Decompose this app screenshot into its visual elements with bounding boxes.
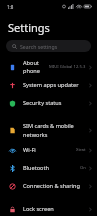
button[interactable]: SIM cards & mobile <box>0 120 97 141</box>
button[interactable]: System apps updater <box>0 76 97 94</box>
staticText: networks <box>23 131 48 139</box>
staticText: SIM cards & mobile <box>23 122 74 130</box>
staticText: Settings <box>8 20 50 35</box>
staticText: 1:8 <box>7 4 14 10</box>
button[interactable]: About phone <box>0 58 97 76</box>
button[interactable]: Search settings <box>6 40 91 52</box>
staticText: On <box>80 165 86 171</box>
button[interactable]: Lock screen <box>0 202 97 216</box>
staticText: Lock screen <box>23 205 54 213</box>
staticText: Bluetooth <box>23 164 49 172</box>
staticText: Search settings <box>20 43 58 50</box>
button[interactable]: Security status <box>0 94 97 112</box>
button[interactable]: Wi-Fi <box>0 141 97 159</box>
staticText: MIUI Global 12.5.3 <box>49 64 86 70</box>
staticText: About phone <box>23 59 49 75</box>
staticText: Xtrat <box>76 147 86 153</box>
button[interactable]: Bluetooth <box>0 159 97 177</box>
staticText: Security status <box>23 99 62 107</box>
staticText: System apps updater <box>23 81 79 89</box>
staticText: Wi-Fi <box>23 146 36 154</box>
button[interactable]: Connection & sharing <box>0 177 97 195</box>
staticText: Connection & sharing <box>23 182 80 190</box>
